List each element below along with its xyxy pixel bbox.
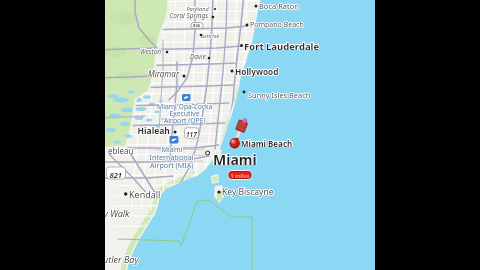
button[interactable]: Map of Miami bbox=[0, 0, 480, 270]
